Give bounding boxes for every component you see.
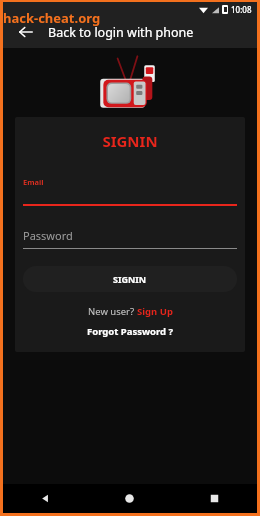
staticText: Sign Up bbox=[137, 305, 173, 318]
staticText: SIGNIN bbox=[23, 131, 237, 151]
staticText: Email bbox=[23, 177, 44, 187]
button[interactable]: Forgot Password ? bbox=[87, 325, 174, 338]
button[interactable]: Back bbox=[3, 484, 87, 513]
button[interactable]: Back bbox=[13, 19, 39, 45]
staticText: SIGNIN bbox=[113, 273, 147, 285]
staticText: New user? bbox=[88, 305, 137, 318]
button[interactable]: Password bbox=[23, 228, 237, 249]
staticText: 10:08 bbox=[231, 4, 252, 15]
button[interactable]: Recent apps bbox=[172, 484, 257, 513]
staticText: Back to login with phone bbox=[48, 24, 194, 41]
staticText: Forgot Password ? bbox=[87, 325, 174, 338]
button[interactable]: Home bbox=[87, 484, 172, 513]
button[interactable]: SIGNIN bbox=[23, 266, 237, 292]
button[interactable]: Email bbox=[23, 177, 237, 206]
staticText: Password bbox=[23, 228, 73, 243]
staticText: hack-cheat.org bbox=[3, 9, 101, 27]
button[interactable]: Sign Up bbox=[137, 305, 173, 318]
